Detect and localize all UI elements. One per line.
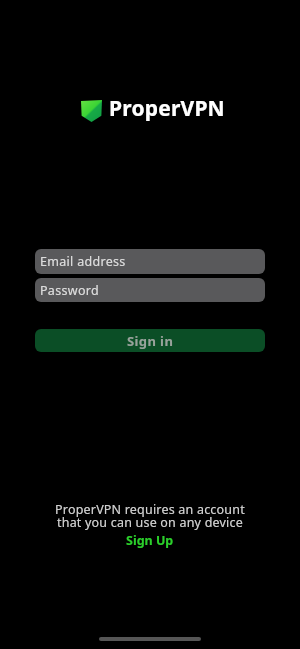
button[interactable]: Email address xyxy=(35,249,265,274)
staticText: Sign Up xyxy=(126,532,174,549)
staticText: that you can use on any device xyxy=(57,514,243,531)
staticText: Sign in xyxy=(127,332,174,350)
button[interactable]: Sign Up xyxy=(126,532,174,549)
button[interactable]: Password xyxy=(35,278,265,302)
button[interactable]: Sign in xyxy=(35,329,265,352)
staticText: Password xyxy=(40,282,99,299)
staticText: ProperVPN xyxy=(109,94,225,123)
staticText: Email address xyxy=(40,253,126,270)
staticText: ProperVPN requires an account xyxy=(55,501,245,518)
